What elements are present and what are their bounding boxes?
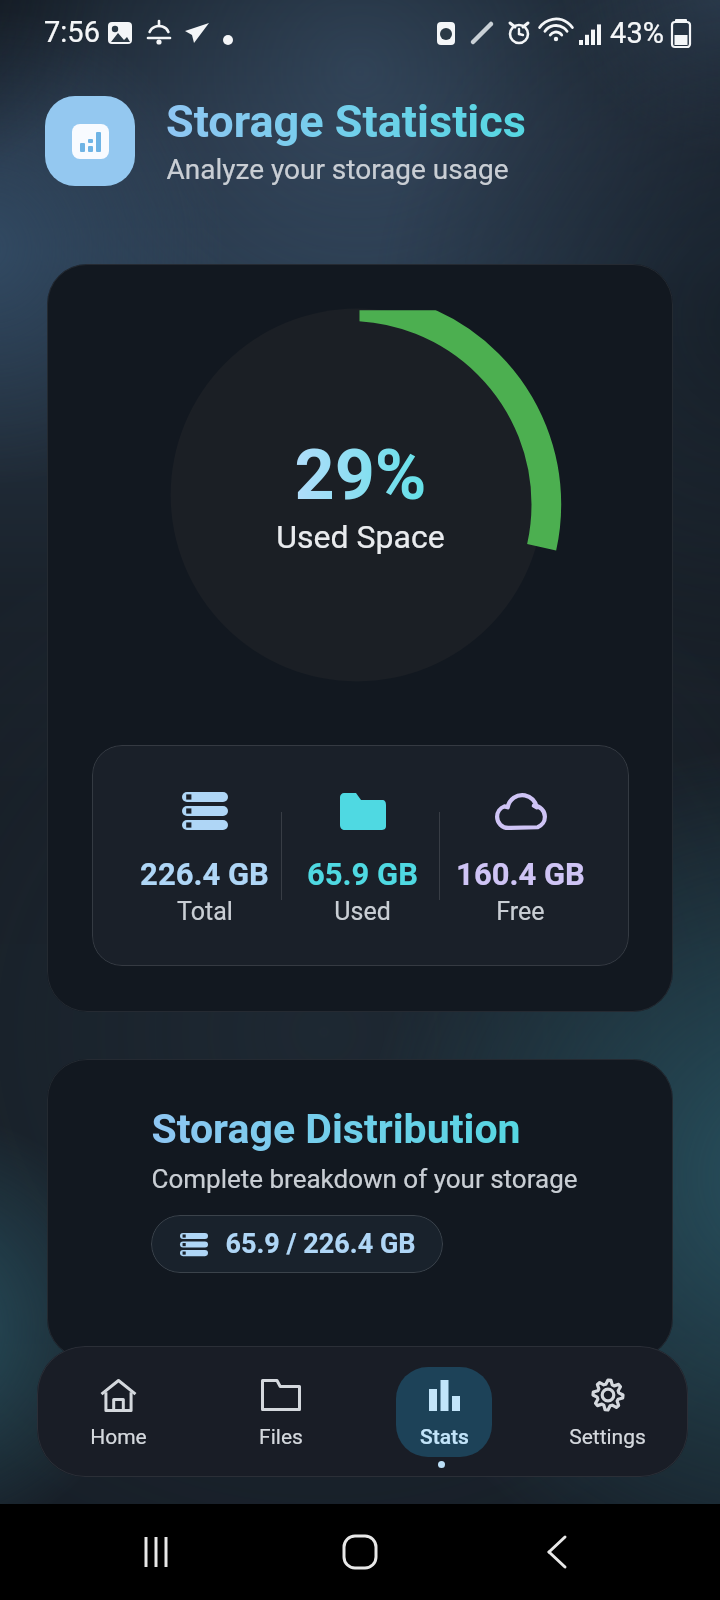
button[interactable]: Stats xyxy=(396,1367,492,1457)
staticText: Complete breakdown of your storage xyxy=(151,1164,578,1194)
staticText: Storage Distribution xyxy=(151,1105,521,1153)
staticText: Analyze your storage usage xyxy=(166,153,509,186)
staticText: 226.4 GB xyxy=(140,856,269,892)
staticText: 7:56 xyxy=(44,15,100,49)
staticText: Free xyxy=(496,897,545,926)
staticText: Settings xyxy=(569,1425,646,1450)
button[interactable]: Home xyxy=(70,1367,166,1457)
staticText: 29% xyxy=(294,434,427,516)
button[interactable]: Settings xyxy=(559,1367,655,1457)
staticText: Stats xyxy=(420,1425,469,1450)
staticText: 65.9 / 226.4 GB xyxy=(225,1228,416,1260)
staticText: Total xyxy=(177,897,233,926)
staticText: 65.9 GB xyxy=(307,856,418,892)
staticText: Files xyxy=(259,1425,303,1450)
staticText: 160.4 GB xyxy=(456,856,585,892)
button[interactable]: 65.9 / 226.4 GB xyxy=(151,1215,443,1273)
staticText: Used Space xyxy=(276,518,445,556)
staticText: Used xyxy=(334,897,391,926)
staticText: 43% xyxy=(610,16,664,50)
staticText: Storage Statistics xyxy=(166,95,526,148)
button[interactable]: Files xyxy=(233,1367,329,1457)
staticText: Home xyxy=(90,1425,147,1450)
